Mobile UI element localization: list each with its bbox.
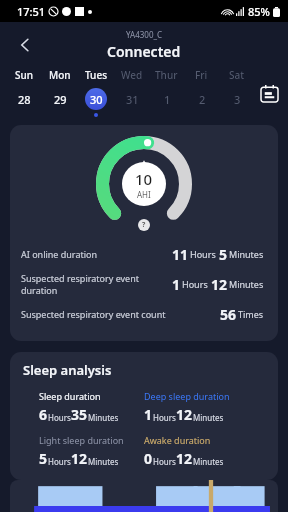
- staticText: 17:51: [17, 4, 46, 19]
- button[interactable]: Sat: [219, 68, 254, 117]
- staticText: Light sleep duration: [39, 434, 124, 446]
- staticText: Sat: [229, 68, 245, 82]
- staticText: YA4300_C: [126, 29, 163, 40]
- staticText: 56: [220, 305, 237, 324]
- staticText: 85%: [248, 4, 270, 19]
- staticText: Minutes: [88, 456, 119, 467]
- button[interactable]: Sun: [6, 68, 42, 117]
- staticText: 29: [54, 92, 67, 107]
- staticText: Hours: [48, 412, 71, 423]
- button[interactable]: Help: [138, 219, 150, 231]
- staticText: Deep sleep duration: [144, 390, 230, 402]
- staticText: Hours: [182, 278, 208, 290]
- button[interactable]: Light sleep duration: [23, 434, 144, 468]
- staticText: Minutes: [193, 456, 224, 467]
- button[interactable]: Tues: [78, 68, 114, 117]
- staticText: Minutes: [88, 412, 119, 423]
- staticText: Fri: [195, 68, 208, 82]
- staticText: AHI: [137, 189, 151, 200]
- button[interactable]: AI online duration: [10, 239, 278, 269]
- staticText: Times: [238, 308, 264, 320]
- staticText: 5: [219, 245, 228, 264]
- button[interactable]: Sleep duration: [23, 390, 144, 424]
- staticText: 1: [144, 405, 153, 424]
- button[interactable]: Mon: [42, 68, 78, 117]
- staticText: 35: [71, 405, 88, 424]
- button[interactable]: Calendar: [254, 73, 284, 113]
- button[interactable]: Fri: [184, 68, 219, 117]
- staticText: Sleep analysis: [23, 361, 112, 379]
- button[interactable]: Deep sleep duration: [144, 390, 265, 424]
- button[interactable]: Thur: [149, 68, 184, 117]
- staticText: ?: [142, 220, 146, 230]
- staticText: 1: [164, 92, 171, 107]
- staticText: 1: [172, 275, 181, 294]
- staticText: 10: [135, 169, 153, 189]
- staticText: Sun: [15, 68, 34, 82]
- staticText: Suspected respiratory event count: [21, 308, 220, 320]
- staticText: Wed: [121, 68, 143, 82]
- staticText: 28: [18, 92, 31, 107]
- staticText: Hours: [48, 456, 71, 467]
- button[interactable]: Back: [8, 28, 42, 62]
- staticText: Hours: [153, 412, 176, 423]
- staticText: 3: [234, 92, 241, 107]
- staticText: Mon: [49, 68, 71, 82]
- button[interactable]: Awake duration: [144, 434, 265, 468]
- staticText: Minutes: [229, 248, 264, 260]
- staticText: Connected: [107, 42, 181, 61]
- staticText: Thur: [155, 68, 178, 82]
- staticText: Suspected respiratory event duration: [21, 272, 172, 296]
- staticText: 31: [126, 92, 139, 107]
- staticText: Hours: [190, 248, 216, 260]
- staticText: 12: [176, 405, 193, 424]
- staticText: 2: [199, 92, 206, 107]
- staticText: 11: [172, 245, 189, 264]
- staticText: 6: [39, 405, 48, 424]
- staticText: Tues: [85, 68, 107, 82]
- button[interactable]: Suspected respiratory event duration: [10, 269, 278, 299]
- staticText: AI online duration: [21, 248, 172, 260]
- staticText: 0: [144, 449, 153, 468]
- button[interactable]: Suspected respiratory event count: [10, 299, 278, 329]
- staticText: 12: [176, 449, 193, 468]
- staticText: 12: [211, 275, 228, 294]
- staticText: 30: [90, 92, 103, 107]
- staticText: Minutes: [193, 412, 224, 423]
- button[interactable]: Wed: [114, 68, 149, 117]
- staticText: Hours: [153, 456, 176, 467]
- staticText: Sleep duration: [39, 390, 101, 402]
- staticText: 5: [39, 449, 48, 468]
- staticText: Awake duration: [144, 434, 211, 446]
- staticText: Minutes: [229, 278, 264, 290]
- staticText: 12: [71, 449, 88, 468]
